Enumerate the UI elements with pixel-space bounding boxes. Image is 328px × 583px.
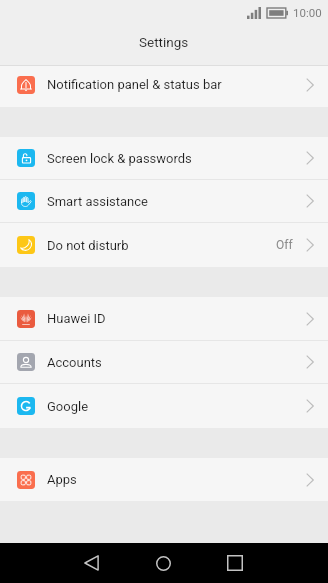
button[interactable]: Apps (0, 458, 328, 501)
button[interactable]: Smart assistance (0, 180, 328, 223)
staticText: Smart assistance (47, 194, 148, 209)
staticText: Accounts (47, 355, 102, 370)
staticText: Screen lock & passwords (47, 151, 192, 166)
button[interactable]: Recent apps (199, 543, 271, 583)
staticText: Google (47, 399, 89, 414)
button[interactable]: Home (127, 543, 199, 583)
button[interactable]: Huawei ID (0, 297, 328, 341)
staticText: 10:00 (293, 6, 322, 19)
staticText: Off (276, 238, 293, 252)
button[interactable]: Do not disturb (0, 223, 328, 267)
button[interactable]: Back (55, 543, 127, 583)
staticText: Huawei ID (47, 311, 106, 326)
button[interactable]: Accounts (0, 341, 328, 384)
staticText: Do not disturb (47, 238, 129, 253)
staticText: Settings (139, 34, 189, 50)
button[interactable]: Google (0, 384, 328, 428)
staticText: Apps (47, 472, 77, 487)
button[interactable]: Notification panel & status bar (0, 66, 328, 107)
staticText: Notification panel & status bar (47, 77, 222, 92)
button[interactable]: Screen lock & passwords (0, 137, 328, 180)
